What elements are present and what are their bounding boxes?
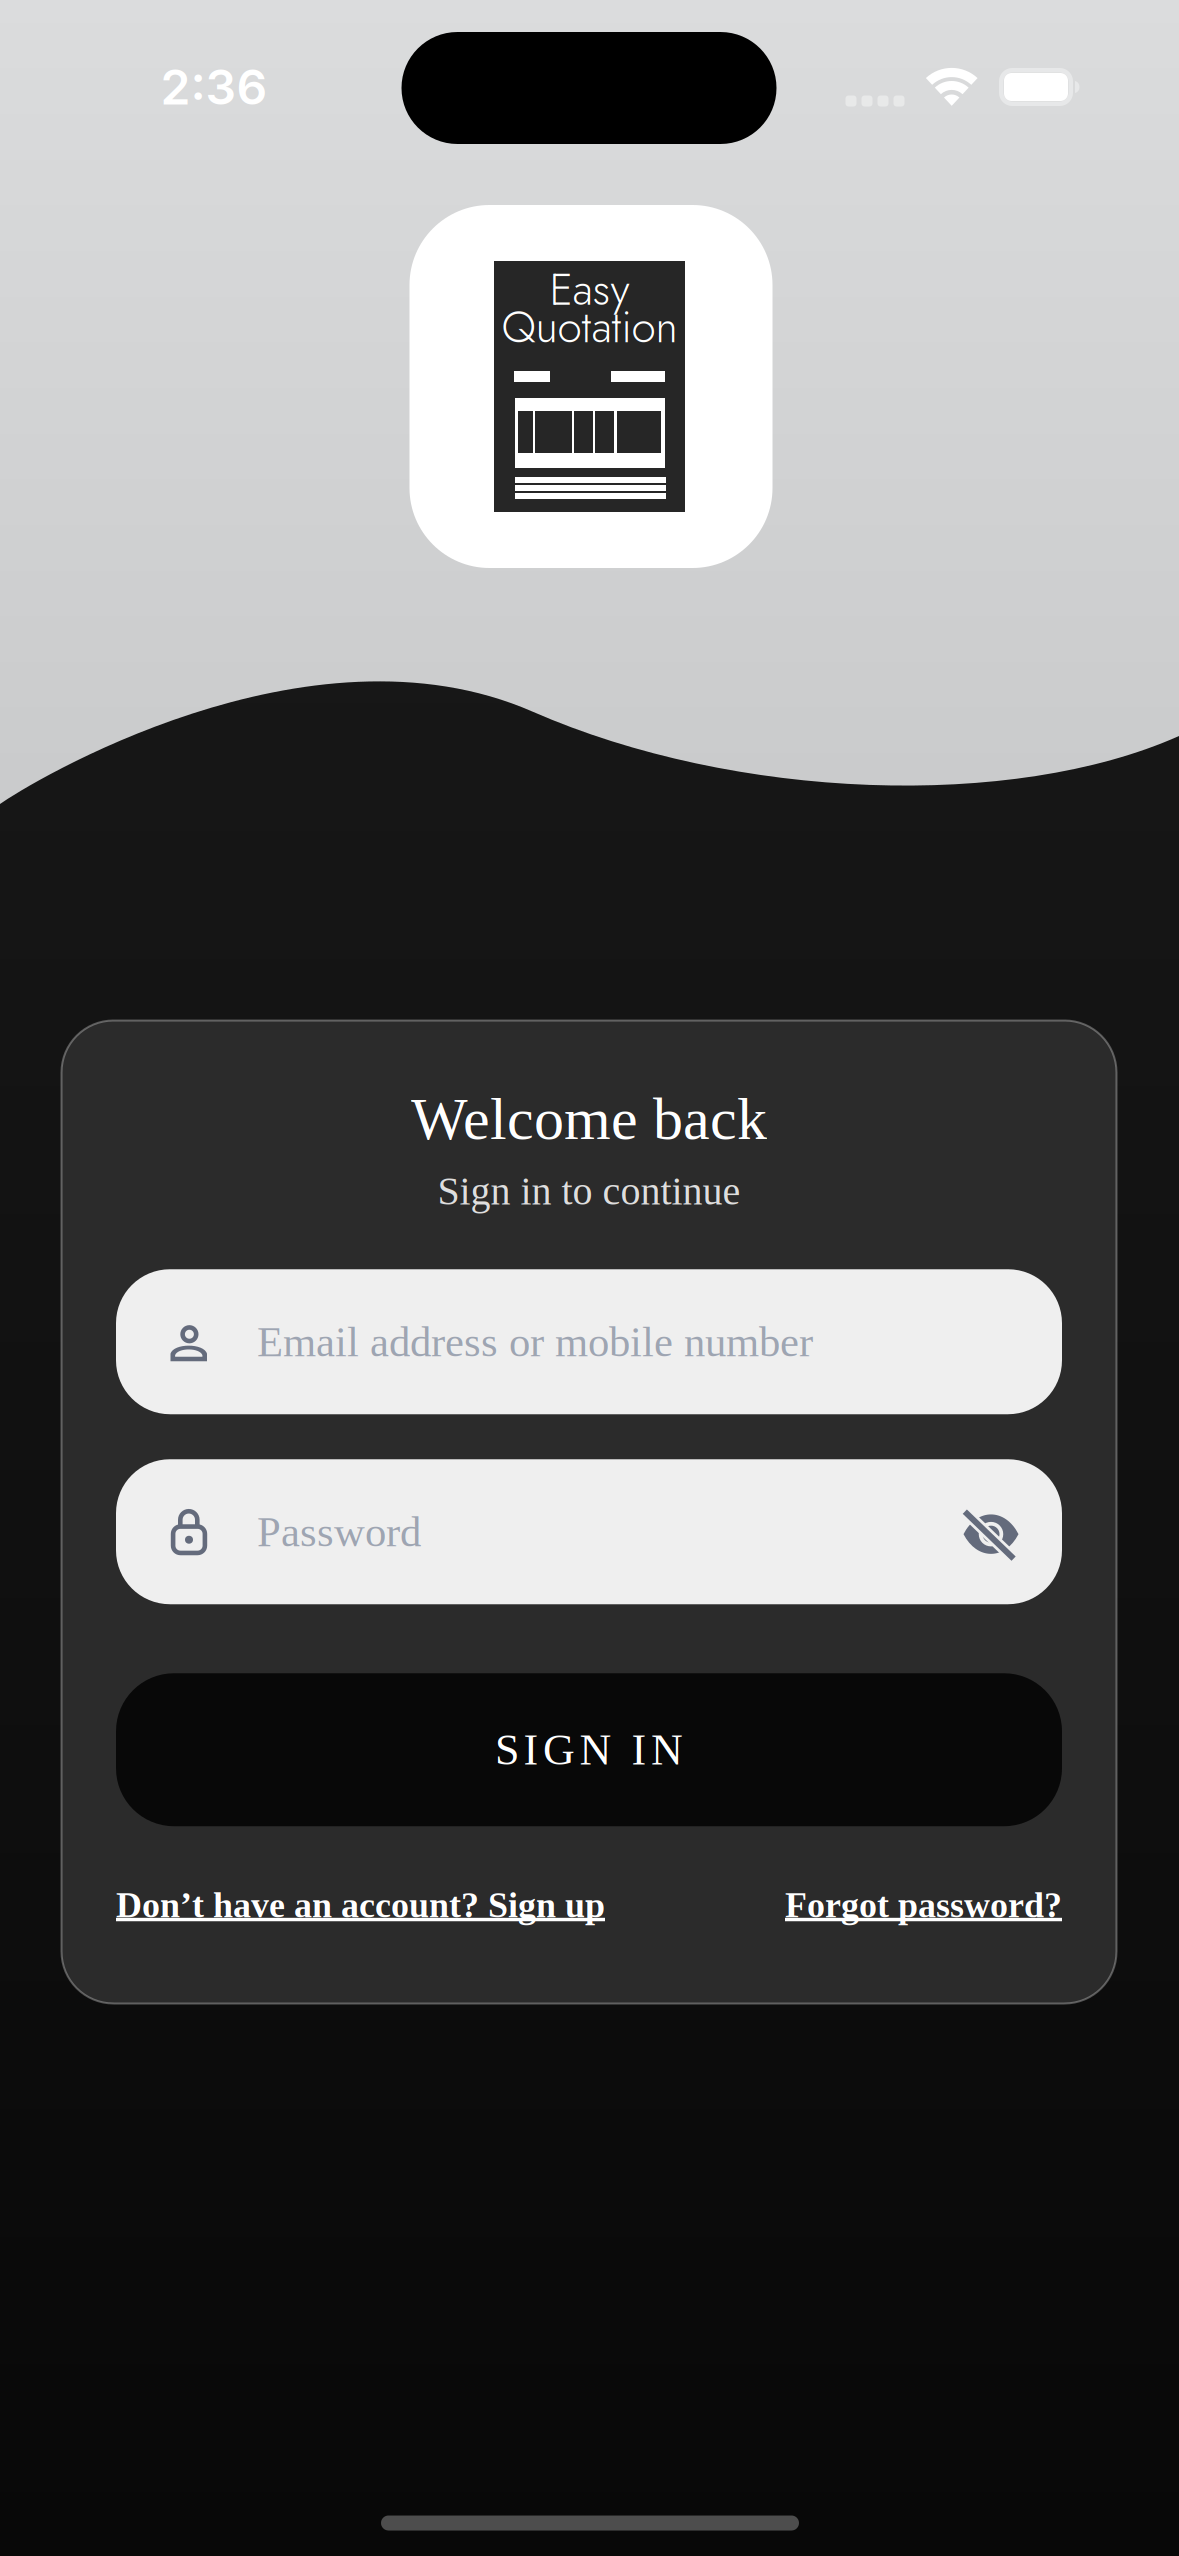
staticText: Email address or mobile number: [257, 1318, 813, 1365]
staticText: Don’t have an account? Sign up: [116, 1885, 605, 1925]
button[interactable]: Forgot password?: [785, 1885, 1062, 1925]
staticText: Password: [257, 1508, 421, 1555]
button[interactable]: SIGN IN: [116, 1673, 1062, 1826]
staticText: SIGN IN: [495, 1725, 683, 1774]
button[interactable]: Password: [116, 1459, 1062, 1604]
staticText: Sign in to continue: [437, 1169, 740, 1213]
button[interactable]: Don’t have an account? Sign up: [116, 1885, 605, 1925]
staticText: Quotation: [501, 295, 677, 359]
staticText: Easy: [549, 258, 629, 321]
button[interactable]: Email address or mobile number: [116, 1269, 1062, 1414]
staticText: Welcome back: [411, 1085, 767, 1152]
staticText: 2:36: [160, 58, 267, 116]
staticText: Forgot password?: [785, 1885, 1062, 1925]
